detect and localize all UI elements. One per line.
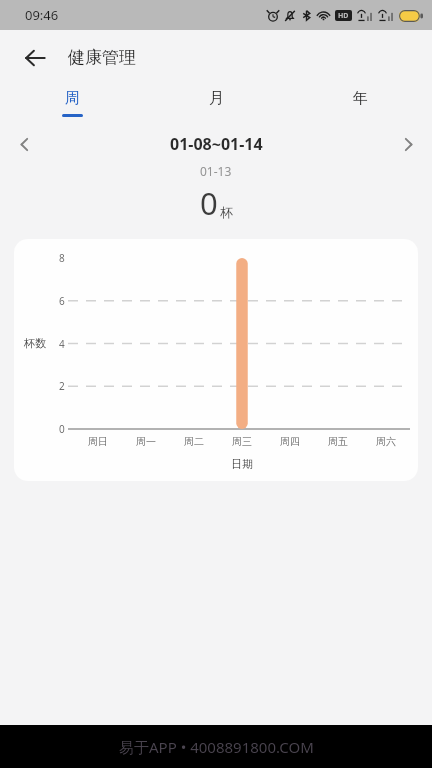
button[interactable]: 年 — [288, 85, 432, 125]
button[interactable]: 周 — [0, 85, 144, 125]
staticText: 周日 — [88, 435, 108, 448]
staticText: 年 — [353, 89, 368, 108]
staticText: 0 — [59, 422, 65, 436]
staticText: 01-13 — [200, 163, 232, 179]
button[interactable]: 月 — [144, 85, 288, 125]
staticText: 易于APP • 4008891800.COM — [119, 737, 314, 757]
staticText: 周五 — [328, 435, 348, 448]
staticText: 01-08~01-14 — [170, 133, 263, 155]
staticText: 杯数 — [24, 336, 46, 350]
staticText: 4 — [59, 337, 65, 351]
staticText: 日期 — [231, 457, 253, 471]
staticText: 09:46 — [25, 6, 59, 24]
staticText: 周六 — [376, 435, 396, 448]
staticText: 周二 — [184, 435, 204, 448]
staticText: 周三 — [232, 435, 252, 448]
staticText: 月 — [209, 89, 224, 108]
button[interactable]: Previous week — [5, 125, 43, 163]
staticText: 2 — [59, 379, 65, 393]
staticText: 周 — [65, 89, 80, 108]
staticText: 0 — [200, 182, 218, 224]
staticText: HD — [338, 11, 349, 21]
button[interactable]: Back — [13, 36, 57, 80]
button[interactable]: Next week — [389, 125, 427, 163]
staticText: 周一 — [136, 435, 156, 448]
staticText: 健康管理 — [68, 47, 136, 68]
staticText: 6 — [59, 294, 65, 308]
staticText: 8 — [59, 251, 65, 265]
staticText: 周四 — [280, 435, 300, 448]
staticText: 杯 — [220, 204, 233, 220]
